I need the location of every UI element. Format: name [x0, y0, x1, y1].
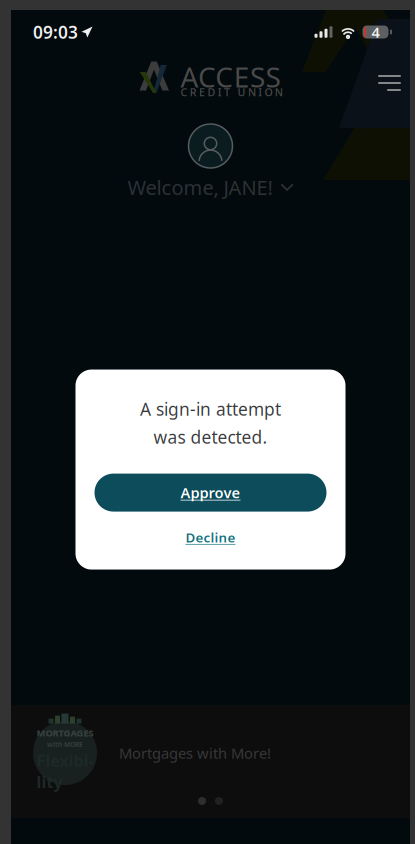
staticText: CREDIT UNION	[180, 85, 283, 99]
staticText: Welcome, JANE!	[127, 174, 272, 201]
staticText: Decline	[185, 529, 235, 546]
button[interactable]: Decline	[169, 522, 251, 553]
staticText: 09:03	[33, 20, 78, 43]
staticText: 4	[371, 22, 379, 42]
staticText: A sign-in attempt	[140, 398, 281, 421]
staticText: Flexibility	[36, 750, 93, 792]
staticText: Mortgages with More!	[119, 743, 271, 763]
staticText: was detected.	[153, 426, 267, 449]
staticText: MORTGAGES	[36, 727, 93, 739]
button[interactable]: Welcome, JANE!	[127, 169, 293, 206]
staticText: Approve	[180, 483, 240, 502]
staticText: ACCESS	[180, 58, 280, 95]
button[interactable]: Menu	[369, 56, 410, 104]
button[interactable]: Profile	[188, 124, 232, 168]
button[interactable]: Approve	[94, 474, 326, 512]
staticText: with MORE	[47, 740, 83, 749]
